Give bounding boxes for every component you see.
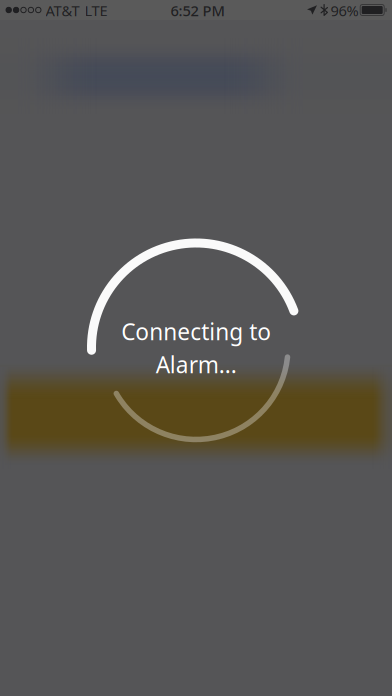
staticText: AT&T xyxy=(45,1,79,20)
staticText: LTE xyxy=(84,1,107,20)
staticText: 96% xyxy=(330,1,358,20)
staticText: Alarm... xyxy=(155,349,236,380)
staticText: 6:52 PM xyxy=(170,1,224,20)
staticText: Connecting to xyxy=(121,316,271,346)
